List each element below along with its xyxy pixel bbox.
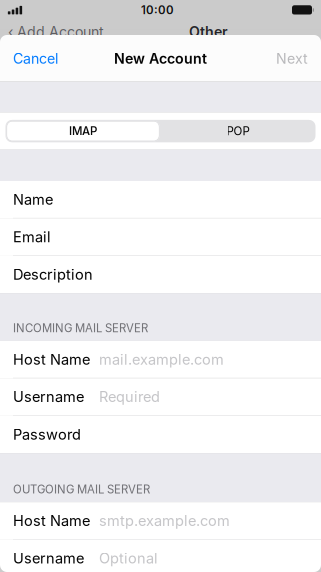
staticText: Cancel bbox=[13, 50, 58, 67]
staticText: Email bbox=[13, 228, 51, 246]
staticText: POP bbox=[226, 124, 249, 138]
staticText: OUTGOING MAIL SERVER bbox=[13, 482, 150, 496]
staticText: ‹ Add Account bbox=[8, 23, 104, 40]
staticText: Host Name bbox=[13, 351, 90, 368]
staticText: Required bbox=[99, 388, 160, 406]
staticText: INCOMING MAIL SERVER bbox=[13, 321, 148, 335]
staticText: Next bbox=[276, 50, 308, 67]
staticText: Name bbox=[13, 191, 53, 208]
staticText: Host Name bbox=[13, 512, 90, 529]
button[interactable]: POP bbox=[160, 120, 315, 142]
button[interactable]: Next bbox=[263, 35, 321, 81]
staticText: Optional bbox=[99, 549, 158, 567]
staticText: Username bbox=[13, 549, 84, 567]
staticText: 10:00 bbox=[141, 3, 174, 17]
staticText: mail.example.com bbox=[99, 351, 224, 368]
staticText: IMAP bbox=[69, 124, 97, 138]
button[interactable]: IMAP bbox=[5, 120, 160, 142]
staticText: New Account bbox=[114, 50, 207, 67]
staticText: Other bbox=[189, 23, 228, 40]
button[interactable]: Cancel bbox=[0, 35, 71, 81]
staticText: Description bbox=[13, 266, 93, 283]
staticText: Password bbox=[13, 426, 81, 443]
staticText: Username bbox=[13, 388, 84, 406]
staticText: smtp.example.com bbox=[99, 512, 230, 529]
